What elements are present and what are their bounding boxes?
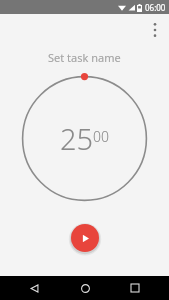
button[interactable]: Recents — [118, 276, 152, 300]
staticText: Set task name — [48, 50, 121, 65]
button[interactable]: Home — [68, 276, 102, 300]
button[interactable]: Back — [17, 276, 51, 300]
staticText: 06:00 — [145, 2, 166, 13]
button[interactable]: Timer dial — [19, 73, 150, 204]
staticText: 2500 — [60, 119, 110, 158]
button[interactable]: Set task name — [36, 46, 133, 69]
button[interactable]: More options — [142, 17, 168, 43]
button[interactable]: Start timer — [71, 224, 99, 252]
